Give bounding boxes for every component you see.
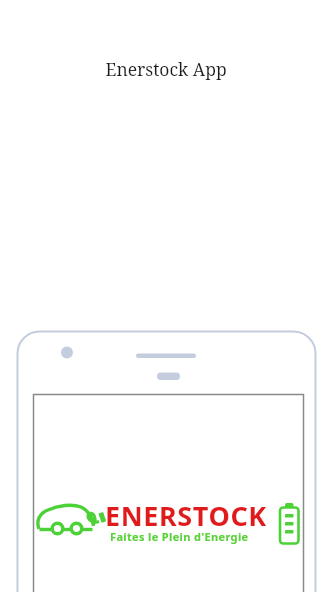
button[interactable]: Enerstock App splash <box>0 0 333 592</box>
